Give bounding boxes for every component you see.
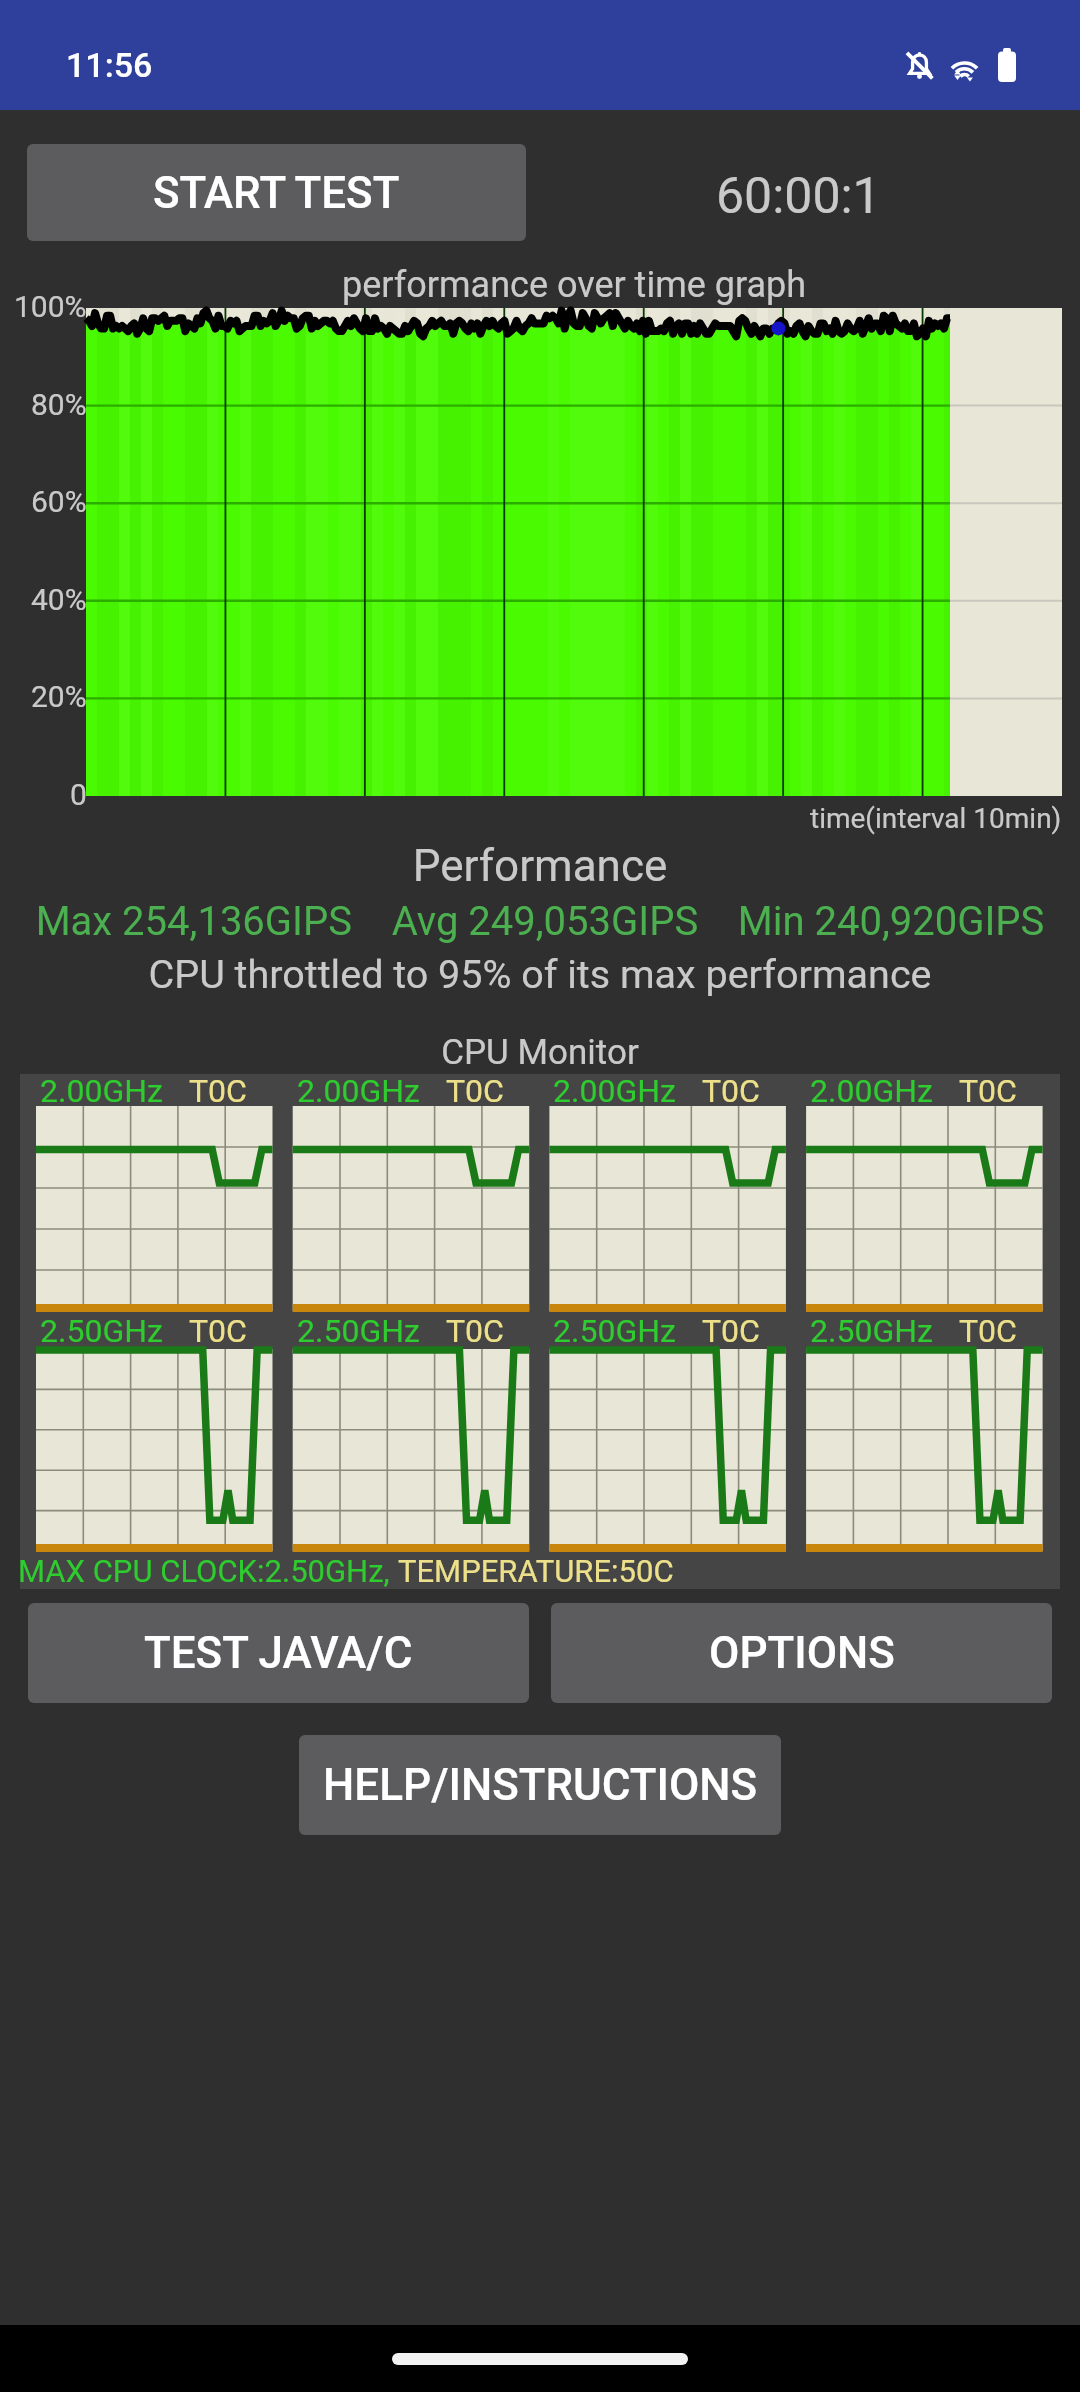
button[interactable]: TEST JAVA/C <box>28 1603 529 1703</box>
staticText: time(interval 10min) <box>810 802 1062 835</box>
staticText: T0C <box>446 1072 504 1110</box>
staticText: T0C <box>189 1072 247 1110</box>
staticText: 80% <box>31 387 87 422</box>
staticText: 40% <box>31 582 87 617</box>
other: Battery <box>998 48 1016 82</box>
staticText: T0C <box>702 1312 760 1350</box>
staticText: 100% <box>14 289 87 324</box>
staticText: TEST JAVA/C <box>144 1627 413 1679</box>
staticText: Performance <box>0 840 1080 892</box>
staticText: OPTIONS <box>709 1627 895 1679</box>
staticText: MAX CPU CLOCK:2.50GHz, <box>18 1553 398 1589</box>
staticText: T0C <box>702 1072 760 1110</box>
staticText: 2.50GHz <box>810 1312 933 1350</box>
staticText: 2.00GHz <box>553 1072 676 1110</box>
staticText: 11:56 <box>66 45 153 85</box>
staticText: 2.00GHz <box>40 1072 163 1110</box>
staticText: 20% <box>31 679 87 714</box>
staticText: T0C <box>959 1312 1017 1350</box>
other: Notifications silenced <box>903 49 936 82</box>
staticText: T0C <box>189 1312 247 1350</box>
staticText: Max 254,136GIPS Avg 249,053GIPS Min 240,… <box>0 898 1080 945</box>
other: Wi-Fi <box>947 49 982 84</box>
staticText: TEMPERATURE:50C <box>398 1553 674 1589</box>
staticText: 2.00GHz <box>810 1072 933 1110</box>
staticText: CPU Monitor <box>0 1032 1080 1073</box>
staticText: 0 <box>70 777 87 812</box>
staticText: 2.50GHz <box>40 1312 163 1350</box>
staticText: performance over time graph <box>342 264 807 306</box>
staticText: 2.00GHz <box>297 1072 420 1110</box>
staticText: T0C <box>959 1072 1017 1110</box>
staticText: START TEST <box>153 167 400 219</box>
staticText: 2.50GHz <box>297 1312 420 1350</box>
staticText: CPU throttled to 95% of its max performa… <box>0 951 1080 997</box>
staticText: 60:00:1 <box>716 167 881 226</box>
button[interactable]: HELP/INSTRUCTIONS <box>299 1735 781 1835</box>
staticText: 2.50GHz <box>553 1312 676 1350</box>
staticText: 60% <box>31 484 87 519</box>
button[interactable]: OPTIONS <box>551 1603 1052 1703</box>
staticText: HELP/INSTRUCTIONS <box>323 1759 758 1811</box>
button[interactable]: START TEST <box>27 144 526 241</box>
staticText: T0C <box>446 1312 504 1350</box>
